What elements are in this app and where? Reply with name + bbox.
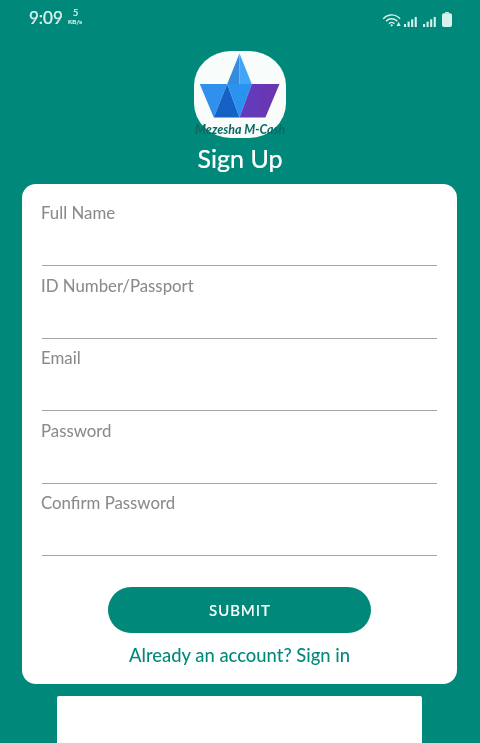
staticText: Email	[41, 347, 81, 367]
staticText: 9:09	[29, 7, 63, 27]
button[interactable]: Password	[42, 416, 437, 484]
staticText: Confirm Password	[41, 492, 176, 512]
other: Battery	[442, 12, 452, 27]
staticText: KB/s	[68, 18, 83, 26]
other: Mobile signal strength	[404, 17, 417, 27]
staticText: ID Number/Passport	[41, 275, 194, 295]
button[interactable]: Already an account? Sign in	[123, 641, 357, 669]
button[interactable]: SUBMIT	[108, 587, 371, 633]
staticText: Password	[41, 420, 112, 440]
button[interactable]: ID Number/Passport	[42, 271, 437, 339]
button[interactable]: Full Name	[42, 198, 437, 266]
staticText: Mezesha M-Cash	[195, 122, 286, 137]
staticText: Sign Up	[0, 143, 480, 173]
other: Mezesha M-Cash logo	[194, 51, 286, 138]
button[interactable]: Email	[42, 343, 437, 411]
staticText: SUBMIT	[209, 601, 271, 619]
button[interactable]: Confirm Password	[42, 488, 437, 556]
other: Wi-Fi signal	[384, 14, 401, 27]
staticText: Full Name	[41, 202, 116, 222]
staticText: 5	[73, 7, 79, 18]
other: Mobile signal strength	[423, 17, 436, 27]
